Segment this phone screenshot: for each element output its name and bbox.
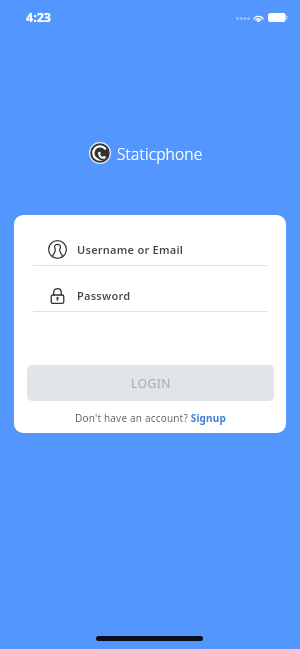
other: Staticphone logo [89, 142, 111, 164]
staticText: 4:23 [26, 9, 51, 26]
button[interactable]: Password [33, 284, 267, 312]
button[interactable]: LOGIN [27, 365, 274, 401]
button[interactable]: Username or Email [33, 238, 267, 266]
button[interactable]: Don't have an account? Signup [14, 407, 286, 429]
staticText: Staticphone [117, 143, 203, 164]
staticText: Password [77, 288, 131, 303]
staticText: LOGIN [131, 375, 171, 391]
staticText: Don't have an account? Signup [75, 411, 226, 425]
staticText: Username or Email [77, 242, 184, 257]
